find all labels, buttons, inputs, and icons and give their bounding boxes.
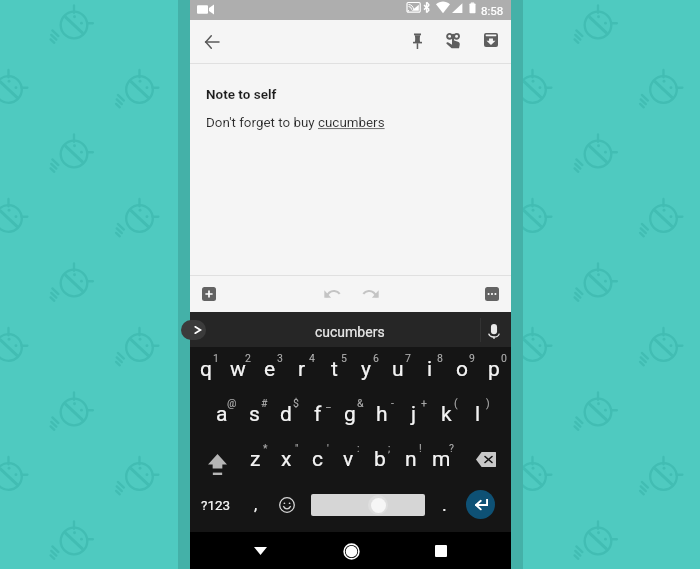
button[interactable]: f (302, 392, 334, 437)
staticText: t (331, 357, 338, 382)
button[interactable]: Voice input (484, 320, 504, 340)
staticText: a (216, 402, 228, 427)
button[interactable]: t (318, 347, 350, 392)
staticText: 0 (501, 352, 507, 364)
button[interactable]: Backspace (457, 437, 505, 482)
button[interactable]: Enter (466, 490, 495, 519)
button[interactable]: a (206, 392, 238, 437)
button[interactable]: Back (247, 538, 273, 564)
staticText: * (263, 442, 268, 454)
button[interactable]: g (334, 392, 366, 437)
button[interactable]: q (190, 347, 222, 392)
staticText: w (230, 357, 246, 382)
staticText: 5 (341, 352, 347, 364)
button[interactable]: c (302, 437, 333, 482)
staticText: 6 (373, 352, 379, 364)
staticText: o (456, 357, 468, 382)
button[interactable]: k (430, 392, 462, 437)
button[interactable]: More options (479, 281, 505, 307)
button[interactable]: h (366, 392, 398, 437)
staticText: 8:58 (481, 4, 504, 17)
staticText: ( (454, 397, 458, 409)
staticText: 8 (437, 352, 443, 364)
staticText: 1 (213, 352, 219, 364)
button[interactable]: Expand suggestions (181, 320, 206, 340)
button[interactable]: m (426, 437, 457, 482)
button[interactable]: ?123 (196, 482, 236, 527)
staticText: . (442, 494, 447, 515)
staticText: j (411, 402, 417, 427)
staticText: ! (419, 442, 422, 454)
staticText: l (475, 402, 481, 427)
button[interactable]: x (271, 437, 302, 482)
staticText: ' (327, 442, 329, 454)
staticText: n (405, 447, 417, 472)
button[interactable]: s (238, 392, 270, 437)
button[interactable]: j (398, 392, 430, 437)
button[interactable]: . (423, 482, 466, 527)
staticText: " (295, 442, 299, 454)
staticText: u (392, 357, 404, 382)
staticText: Don't forget to buy cucumbers (206, 115, 385, 131)
staticText: r (298, 357, 306, 382)
staticText: p (488, 357, 500, 382)
button[interactable]: Shift (196, 437, 240, 482)
button[interactable]: , (236, 482, 276, 527)
button[interactable]: l (462, 392, 494, 437)
button[interactable]: Back (198, 28, 226, 56)
staticText: y (361, 357, 371, 382)
button[interactable]: z (240, 437, 271, 482)
staticText: ) (486, 397, 490, 409)
staticText: , (254, 495, 258, 514)
staticText: d (280, 402, 292, 427)
staticText: i (427, 357, 433, 382)
button[interactable]: Home (338, 538, 364, 564)
staticText: e (264, 357, 276, 382)
staticText: $ (293, 397, 299, 409)
button[interactable]: Pin (400, 25, 434, 59)
staticText: _ (326, 397, 331, 409)
button[interactable]: Archive (474, 25, 508, 59)
button[interactable]: cucumbers (315, 324, 385, 340)
button[interactable]: d (270, 392, 302, 437)
staticText: g (344, 402, 356, 427)
staticText: + (421, 397, 427, 409)
staticText: ?123 (201, 497, 231, 513)
button[interactable]: Recents (428, 538, 454, 564)
staticText: 4 (309, 352, 315, 364)
button[interactable]: Reminder (436, 25, 470, 59)
button[interactable]: y (350, 347, 382, 392)
button[interactable]: i (414, 347, 446, 392)
staticText: f (314, 402, 322, 427)
button[interactable]: Undo (320, 282, 344, 306)
staticText: b (374, 447, 386, 472)
staticText: q (200, 357, 212, 382)
staticText: m (432, 447, 451, 472)
staticText: Note to self (206, 86, 277, 102)
button[interactable]: r (286, 347, 318, 392)
button[interactable]: Redo (358, 282, 382, 306)
staticText: s (249, 402, 260, 427)
staticText: k (441, 402, 452, 427)
staticText: h (376, 402, 388, 427)
button[interactable]: b (364, 437, 395, 482)
staticText: : (357, 442, 360, 454)
button[interactable]: w (222, 347, 254, 392)
button[interactable]: p (478, 347, 510, 392)
button[interactable]: Add (196, 281, 222, 307)
button[interactable]: e (254, 347, 286, 392)
button[interactable]: v (333, 437, 364, 482)
button[interactable]: Emoji (276, 482, 309, 527)
staticText: 9 (469, 352, 475, 364)
button[interactable]: Space (311, 494, 425, 516)
button[interactable]: n (395, 437, 426, 482)
button[interactable]: o (446, 347, 478, 392)
staticText: c (312, 447, 323, 472)
staticText: ; (388, 442, 391, 454)
staticText: 7 (405, 352, 411, 364)
button[interactable]: u (382, 347, 414, 392)
staticText: 2 (245, 352, 251, 364)
staticText: 3 (277, 352, 283, 364)
staticText: x (281, 447, 292, 472)
staticText: - (391, 397, 394, 409)
